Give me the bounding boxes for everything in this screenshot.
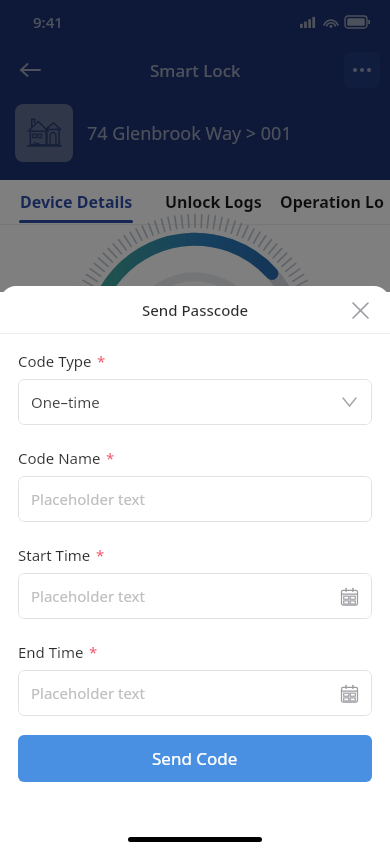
staticText: Device Details xyxy=(20,191,133,213)
button[interactable]: Operation Lo xyxy=(274,180,390,224)
button[interactable]: More options xyxy=(344,52,380,88)
button[interactable]: Unlock Logs xyxy=(152,180,274,224)
staticText: End Time xyxy=(18,642,84,662)
button[interactable]: Placeholder text xyxy=(18,476,372,522)
staticText: Unlock Logs xyxy=(165,191,262,213)
staticText: 9:41 xyxy=(33,12,63,32)
button[interactable]: Send Code xyxy=(18,735,372,782)
staticText: 74 Glenbrook Way > 001 xyxy=(87,121,292,146)
staticText: Smart Lock xyxy=(150,59,241,82)
staticText: Placeholder text xyxy=(31,586,145,606)
button[interactable]: One–time xyxy=(18,379,372,425)
staticText: Operation Lo xyxy=(280,191,384,213)
button[interactable]: Device Details xyxy=(0,180,152,224)
staticText: Send Passcode xyxy=(142,300,249,320)
staticText: * xyxy=(96,545,105,565)
button[interactable]: Placeholder text xyxy=(18,670,372,716)
staticText: Send Code xyxy=(152,747,238,770)
staticText: Code Type xyxy=(18,351,92,371)
staticText: Placeholder text xyxy=(31,489,145,509)
staticText: One–time xyxy=(31,392,100,412)
staticText: Placeholder text xyxy=(31,683,145,703)
button[interactable]: Close xyxy=(340,290,380,330)
staticText: Start Time xyxy=(18,545,91,565)
staticText: * xyxy=(97,351,106,371)
button[interactable]: Placeholder text xyxy=(18,573,372,619)
staticText: Code Name xyxy=(18,448,101,468)
button[interactable]: 74 Glenbrook Way > 001 xyxy=(0,100,390,166)
staticText: * xyxy=(89,642,98,662)
staticText: * xyxy=(106,448,115,468)
button[interactable]: Back xyxy=(8,48,52,92)
